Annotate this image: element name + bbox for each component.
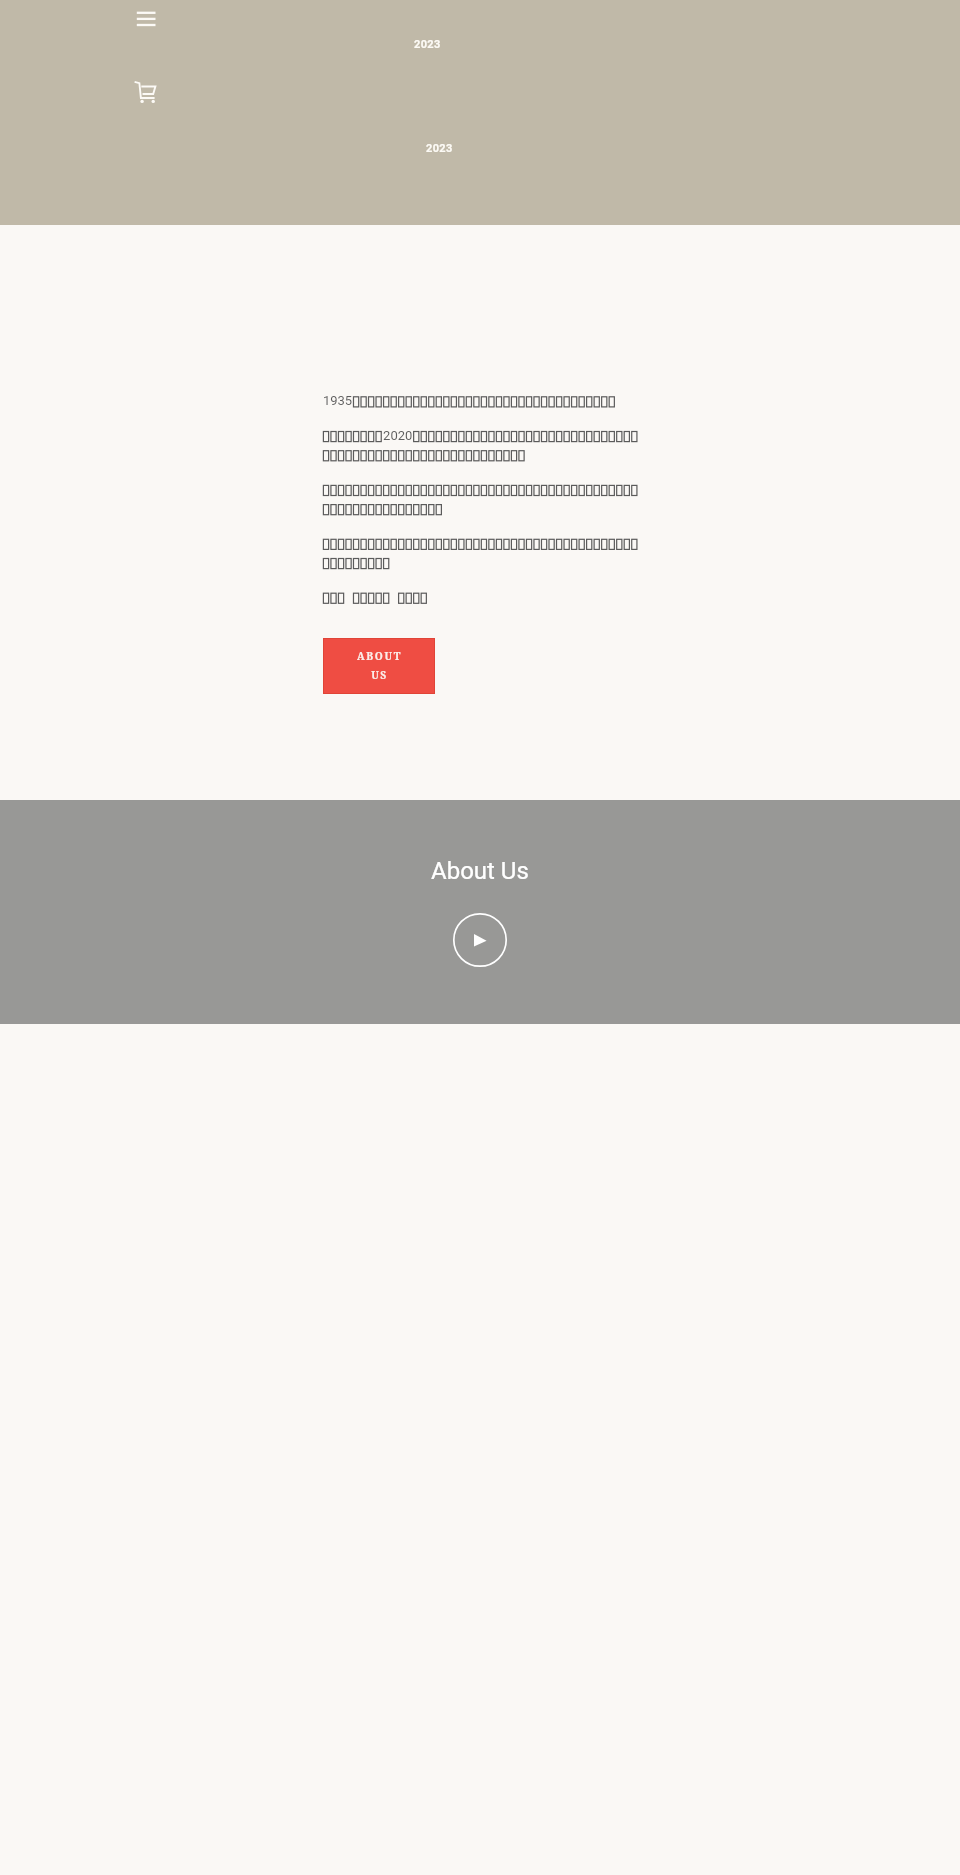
staticText: 2023 bbox=[414, 38, 441, 51]
button[interactable]: Shopping cart bbox=[130, 78, 160, 106]
button[interactable]: ABOUT US bbox=[323, 638, 435, 694]
button[interactable]: Play video bbox=[453, 913, 507, 967]
staticText: 2023 bbox=[426, 142, 453, 155]
button[interactable]: Open menu bbox=[130, 4, 163, 32]
staticText: About Us bbox=[431, 857, 529, 885]
staticText: ABOUT US bbox=[357, 649, 402, 682]
